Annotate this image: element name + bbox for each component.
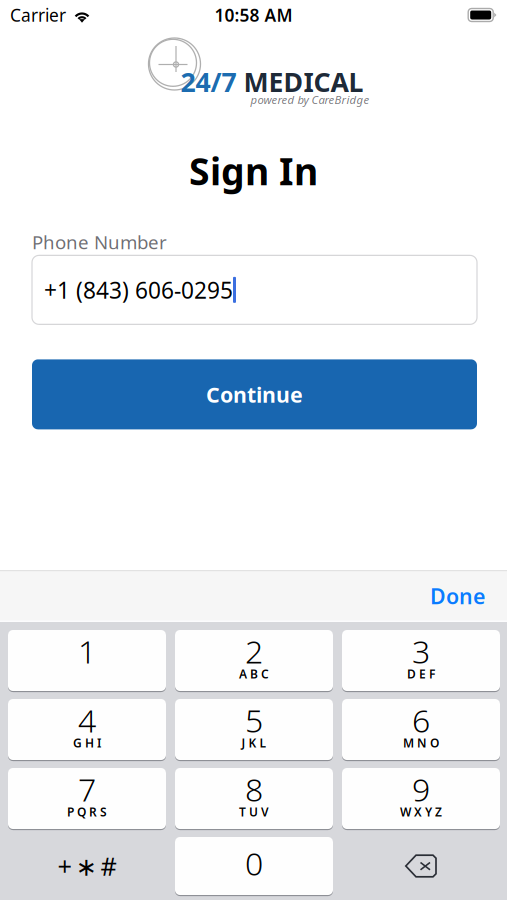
button[interactable]: 0 — [175, 837, 333, 895]
button[interactable]: 9 — [342, 768, 500, 829]
staticText: 24/7 — [180, 64, 236, 99]
staticText: Continue — [206, 380, 303, 408]
staticText: 3 — [412, 630, 430, 672]
staticText: 0 — [245, 842, 263, 884]
button[interactable]: 8 — [175, 768, 333, 829]
button[interactable]: 7 — [8, 768, 166, 829]
staticText: powered by CareBridge — [250, 92, 369, 107]
button[interactable]: 6 — [342, 699, 500, 760]
staticText: MEDICAL — [236, 64, 363, 99]
staticText: Sign In — [189, 146, 318, 196]
staticText: +1 (843) 606-0295 — [44, 275, 233, 305]
staticText: 9 — [412, 768, 430, 810]
button[interactable]: Continue — [32, 359, 477, 429]
button[interactable]: 4 — [8, 699, 166, 760]
staticText: 5 — [245, 699, 263, 741]
staticText: A B C — [239, 666, 269, 682]
staticText: Done — [430, 582, 485, 610]
staticText: Carrier — [10, 3, 66, 26]
staticText: + ∗ # — [57, 849, 116, 883]
button[interactable]: Delete — [342, 837, 500, 895]
staticText: 10:58 AM — [214, 3, 292, 26]
staticText: W X Y Z — [400, 804, 442, 820]
staticText: 8 — [245, 768, 263, 810]
staticText: P Q R S — [67, 804, 107, 820]
staticText: 6 — [412, 699, 430, 741]
button[interactable]: 5 — [175, 699, 333, 760]
button[interactable]: 3 — [342, 630, 500, 691]
staticText: 1 — [78, 630, 96, 672]
staticText: D E F — [407, 666, 435, 682]
staticText: G H I — [73, 735, 101, 751]
staticText: M N O — [403, 735, 439, 751]
staticText: T U V — [239, 804, 269, 820]
staticText: J K L — [241, 735, 266, 751]
button[interactable]: 2 — [175, 630, 333, 691]
button[interactable]: 1 — [8, 630, 166, 691]
staticText: 2 — [245, 630, 263, 672]
button[interactable]: Symbols — [8, 837, 166, 895]
staticText: Phone Number — [32, 230, 167, 254]
staticText: 4 — [78, 699, 96, 741]
button[interactable]: Done — [410, 572, 507, 620]
staticText: 7 — [78, 768, 96, 810]
